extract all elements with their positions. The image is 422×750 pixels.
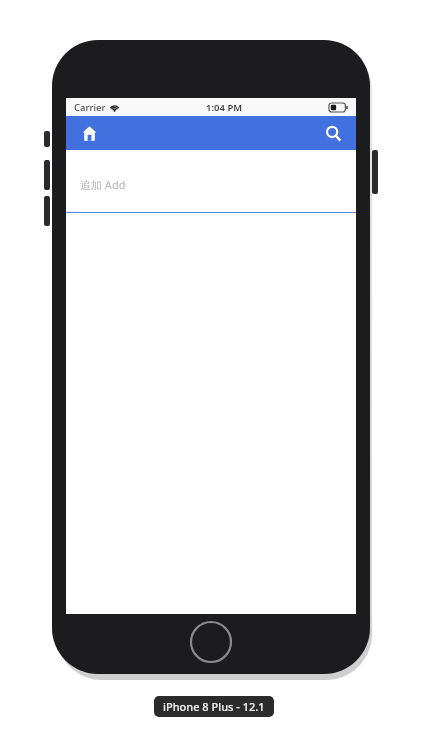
staticText: 追加 Add: [80, 177, 126, 192]
button[interactable]: Search: [320, 120, 346, 146]
staticText: 1:04 PM: [206, 101, 243, 114]
staticText: Carrier: [74, 101, 106, 114]
button[interactable]: 追加 Add: [66, 150, 356, 212]
button[interactable]: Home: [189, 620, 233, 664]
staticText: iPhone 8 Plus - 12.1: [163, 699, 265, 714]
button[interactable]: Home: [76, 120, 102, 146]
